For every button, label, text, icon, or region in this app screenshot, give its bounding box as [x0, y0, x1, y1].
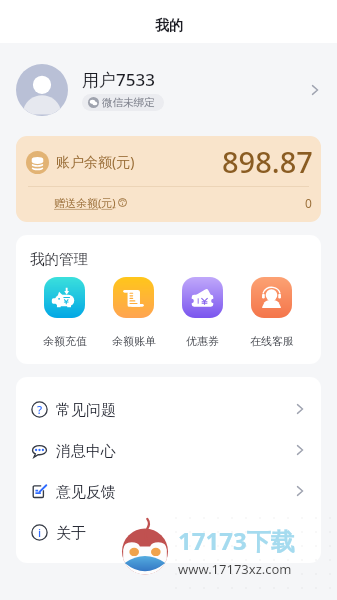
button[interactable]: 余额账单: [103, 277, 164, 348]
staticText: 常见问题: [56, 401, 116, 420]
other: More: [295, 404, 305, 414]
staticText: 我的: [155, 17, 183, 35]
staticText: ?: [37, 402, 43, 418]
button[interactable]: i: [16, 513, 321, 554]
staticText: i: [38, 525, 42, 541]
staticText: 消息中心: [56, 442, 116, 461]
button[interactable]: 账户余额(元): [16, 136, 321, 222]
button[interactable]: 在线客服: [241, 277, 302, 348]
other: More: [295, 445, 305, 455]
staticText: 余额账单: [112, 334, 156, 348]
staticText: 0: [305, 195, 312, 211]
staticText: 优惠券: [186, 334, 219, 348]
other: More: [295, 486, 305, 496]
staticText: 我的管理: [30, 250, 88, 268]
button[interactable]: 消息中心: [16, 431, 321, 472]
staticText: 赠送余额(元): [54, 195, 116, 210]
staticText: 关于: [56, 524, 86, 543]
staticText: 意见反馈: [56, 483, 116, 502]
staticText: 账户余额(元): [56, 152, 135, 171]
button[interactable]: 意见反馈: [16, 472, 321, 513]
button[interactable]: 优惠券: [172, 277, 233, 348]
staticText: 17173下载: [178, 524, 295, 557]
staticText: www.17173xz.com: [178, 560, 292, 578]
button[interactable]: 用户7533: [0, 43, 337, 136]
button[interactable]: ?: [16, 390, 321, 431]
staticText: 用户7533: [82, 68, 155, 91]
staticText: 微信未绑定: [102, 96, 155, 109]
staticText: 898.87: [222, 142, 313, 181]
staticText: 余额充值: [43, 334, 87, 348]
button[interactable]: 余额充值: [34, 277, 95, 348]
other: More: [310, 85, 320, 95]
staticText: 在线客服: [250, 334, 294, 348]
